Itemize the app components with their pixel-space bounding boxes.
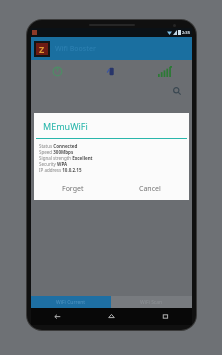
button[interactable]: Back	[31, 308, 84, 325]
staticText: Z	[39, 43, 45, 55]
button[interactable]: Signal strength	[138, 60, 192, 82]
staticText: Forget	[62, 184, 84, 194]
staticText: Cancel	[139, 184, 161, 194]
button[interactable]: MEmuWiFi Connected	[31, 108, 192, 140]
staticText: IP address 10.0.2.15	[39, 167, 82, 173]
staticText: Signal strength Excellent	[39, 155, 93, 161]
button[interactable]: Forget	[34, 180, 111, 197]
button[interactable]: Boost	[31, 60, 84, 82]
staticText: Security WPA	[39, 161, 68, 167]
staticText: Status Connected	[39, 143, 78, 149]
staticText: Speed 300Mbps	[36, 125, 74, 132]
button[interactable]: Home	[84, 308, 138, 325]
staticText: WiFi Scan	[140, 299, 163, 306]
staticText: 2:35	[182, 30, 190, 35]
button[interactable]: Cancel	[111, 180, 189, 197]
button[interactable]: WiFi Current	[31, 296, 111, 308]
staticText: Speed 300Mbps	[39, 149, 74, 155]
staticText: MEmuWiFi	[43, 120, 88, 132]
button[interactable]: Recents	[138, 308, 192, 325]
button[interactable]: Devices	[84, 60, 138, 82]
staticText: WiFi Current	[56, 299, 86, 306]
button[interactable]: Search	[170, 84, 183, 97]
staticText: Wifi Booster	[55, 44, 96, 54]
